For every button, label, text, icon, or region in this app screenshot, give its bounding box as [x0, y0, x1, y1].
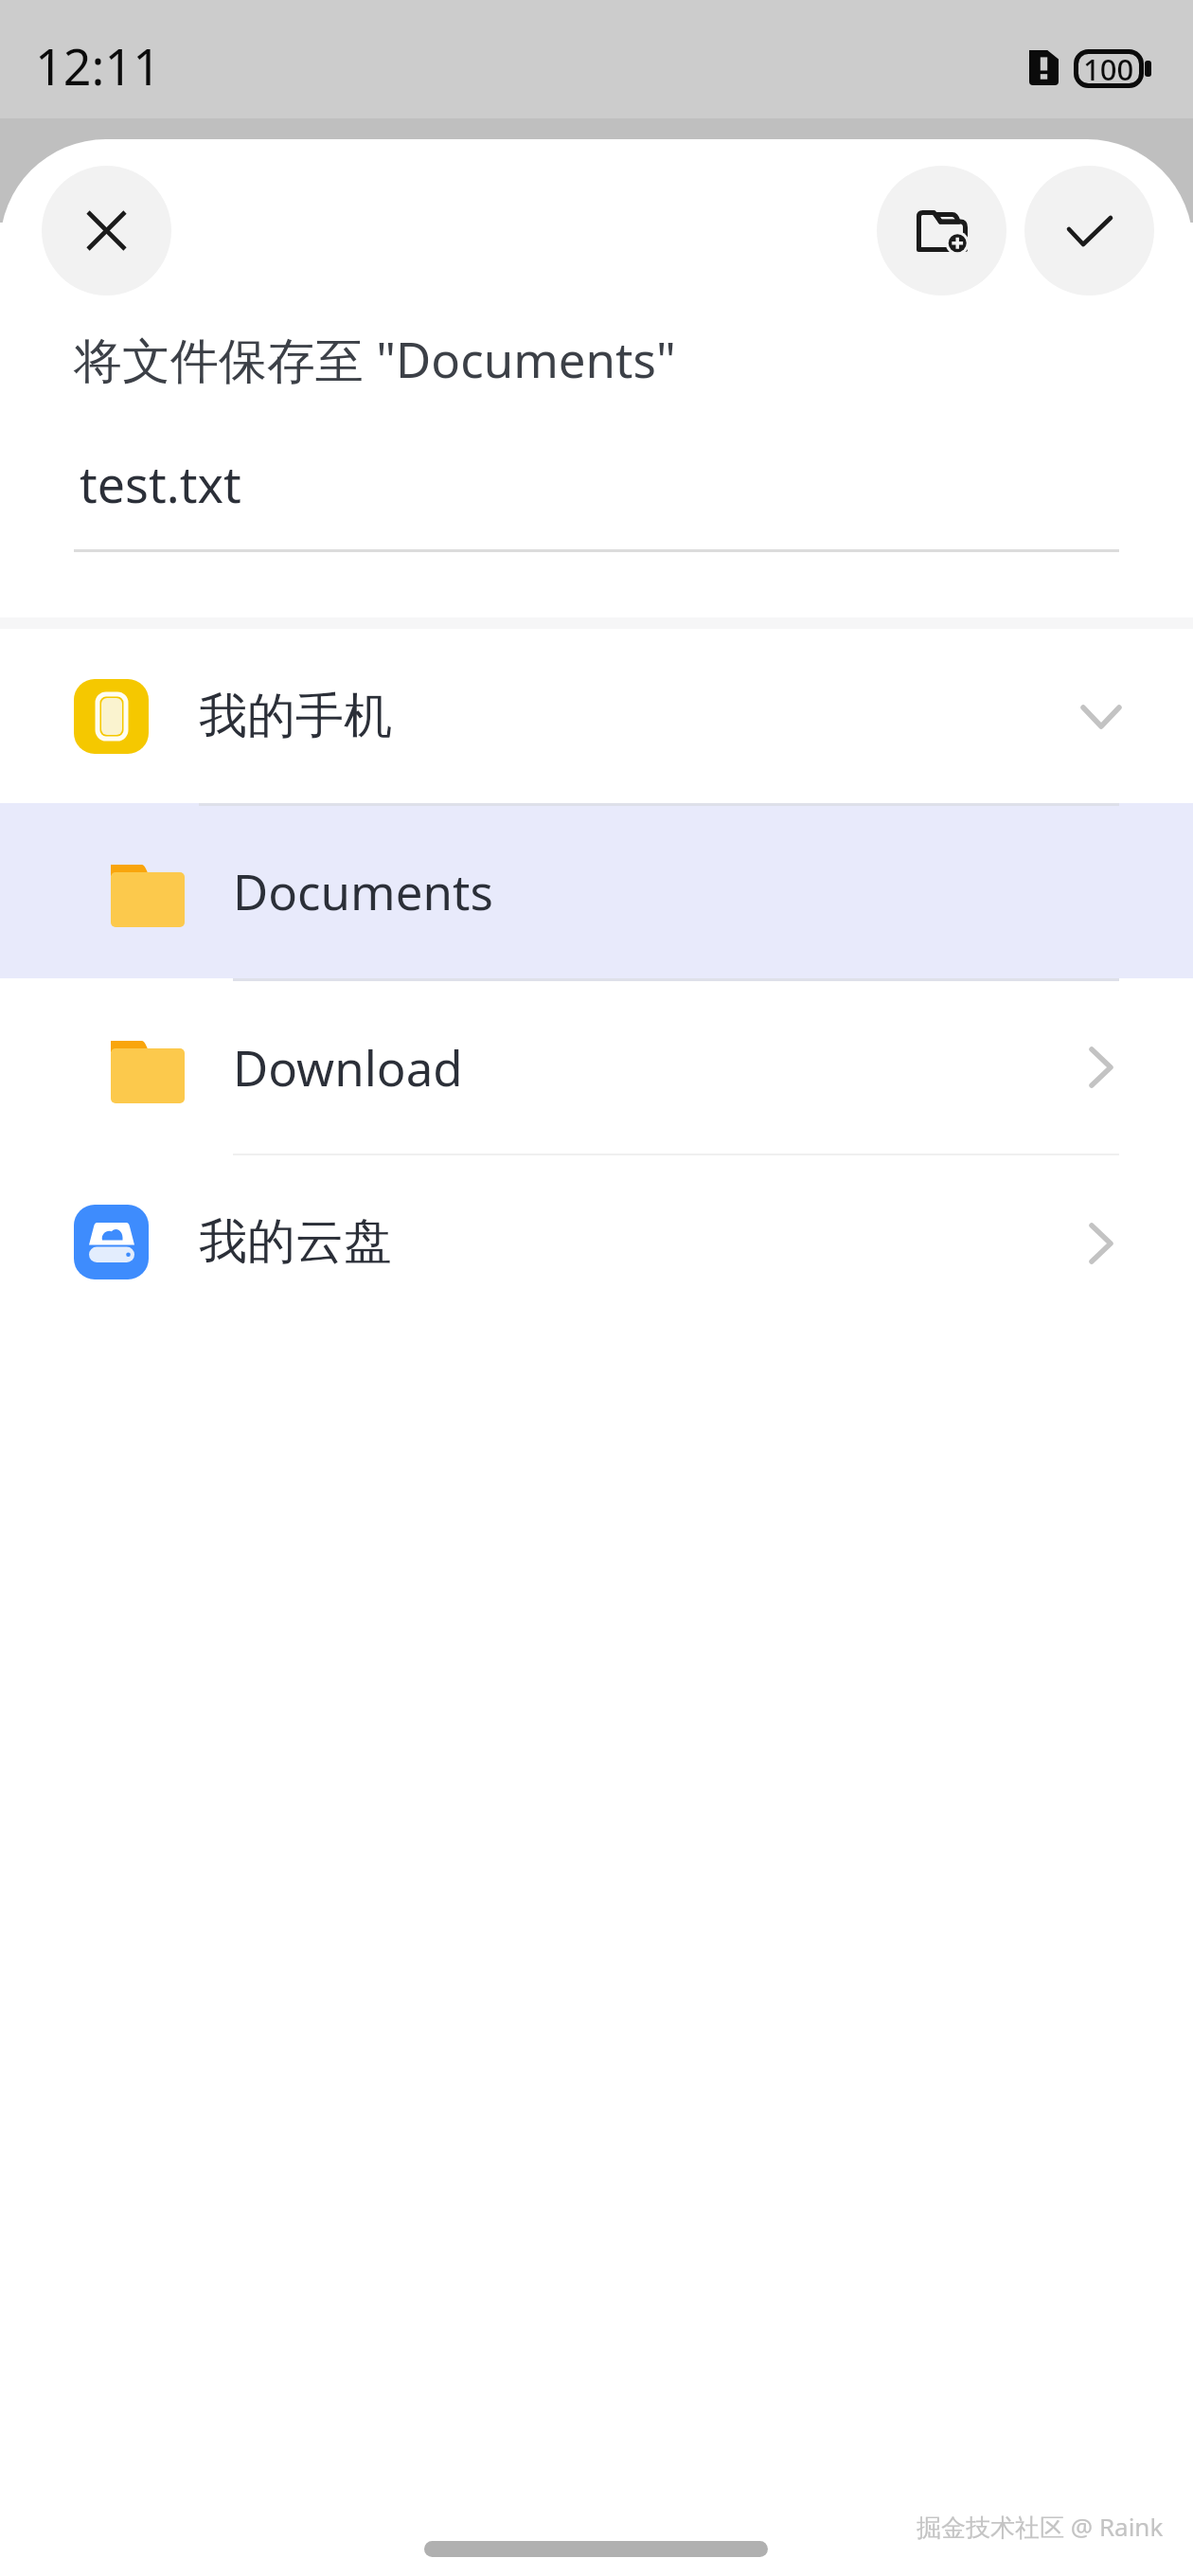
button[interactable]: Documents	[0, 803, 1193, 978]
staticText: 将文件保存至 "Documents"	[74, 326, 676, 392]
staticText: 12:11	[35, 32, 161, 99]
button[interactable]: 我的手机	[0, 629, 1193, 803]
button[interactable]: Download	[0, 978, 1193, 1155]
staticText: 我的云盘	[199, 1211, 392, 1272]
button[interactable]: New folder	[877, 166, 1006, 295]
staticText: test.txt	[80, 450, 241, 517]
button[interactable]: Confirm	[1024, 166, 1154, 295]
staticText: 掘金技术社区 @ Raink	[917, 2510, 1164, 2544]
staticText: 我的手机	[199, 686, 392, 746]
staticText: 100	[1083, 49, 1134, 88]
button[interactable]: 我的云盘	[0, 1155, 1193, 1328]
staticText: Documents	[233, 858, 493, 923]
button[interactable]: Close	[42, 166, 171, 295]
staticText: Download	[233, 1034, 463, 1100]
button[interactable]: test.txt	[74, 431, 1119, 552]
